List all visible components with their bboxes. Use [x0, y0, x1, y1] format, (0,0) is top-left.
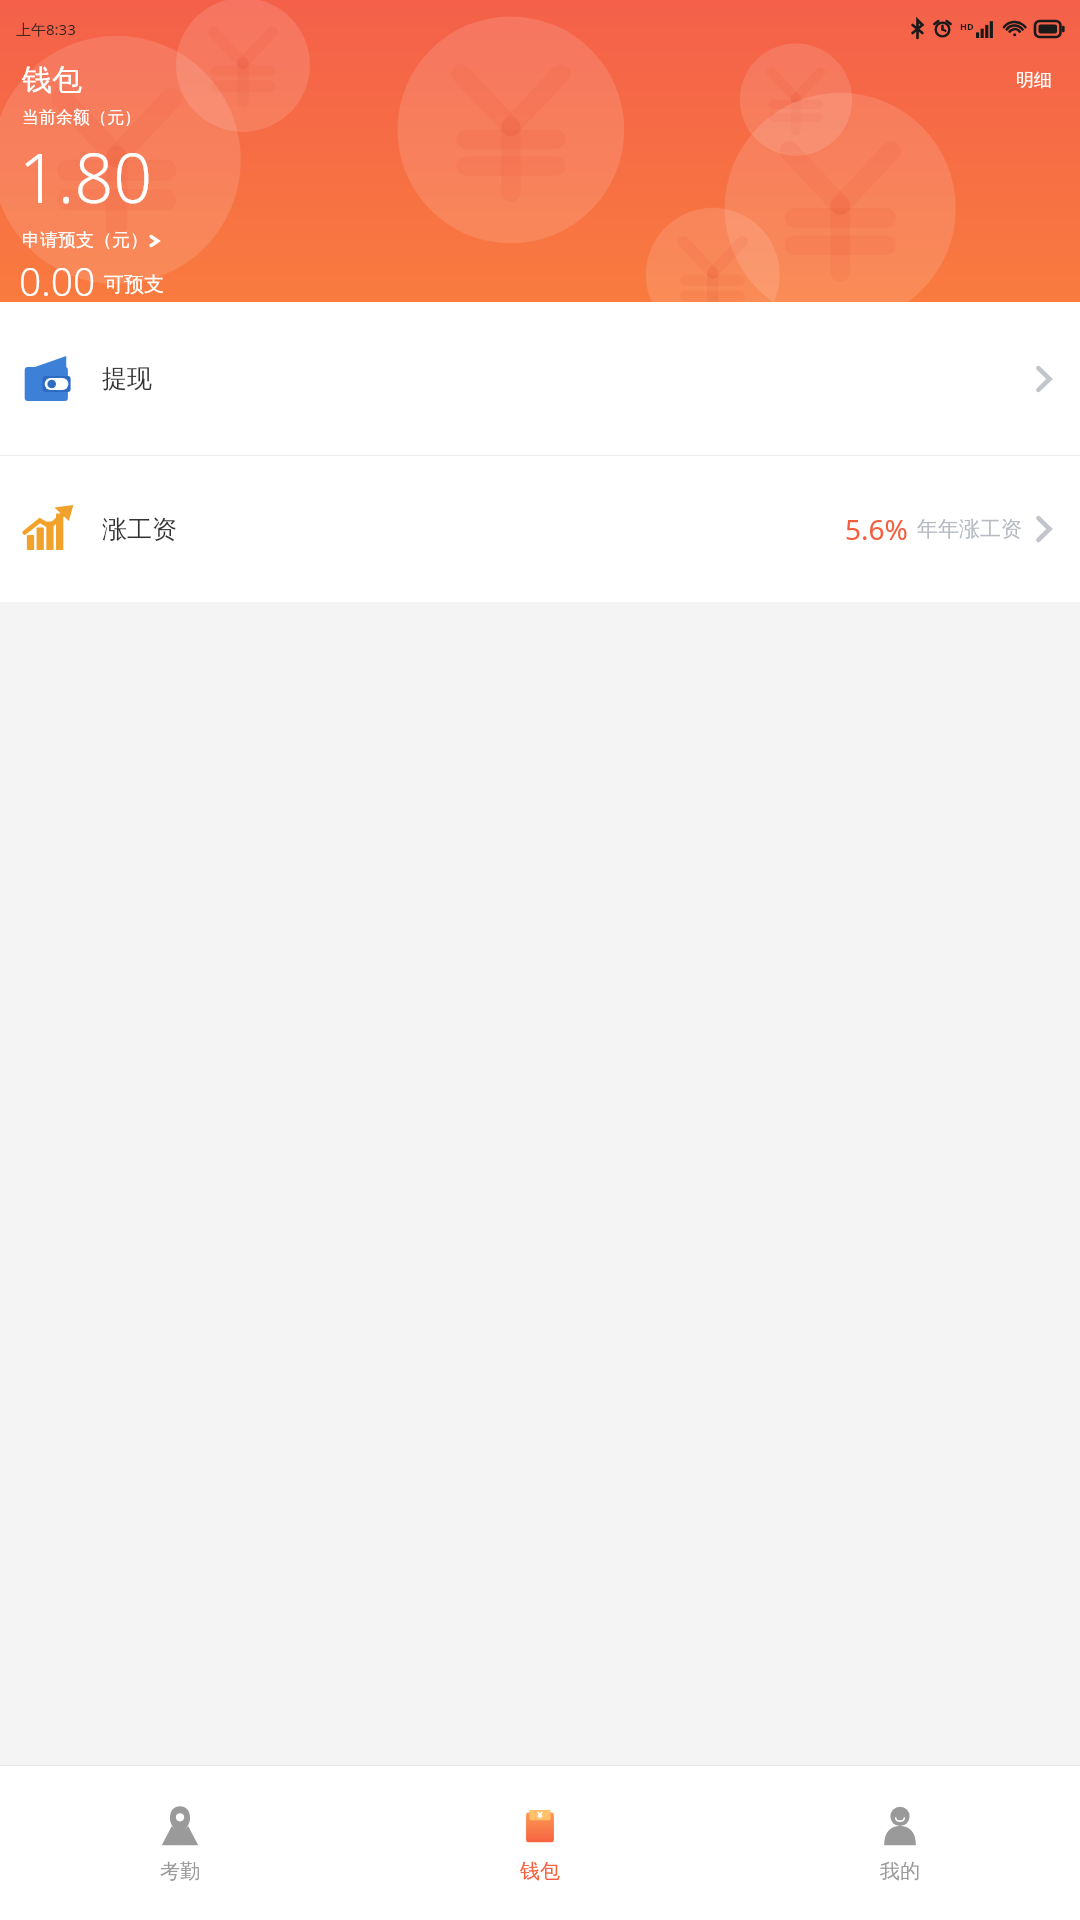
staticText: 我的: [880, 1859, 920, 1884]
button[interactable]: 钱包: [360, 1766, 720, 1920]
button[interactable]: 涨工资: [0, 456, 1080, 602]
staticText: 涨工资: [102, 514, 177, 545]
staticText: 0.00: [19, 254, 96, 302]
button[interactable]: 明细: [1008, 63, 1060, 98]
staticText: 考勤: [160, 1859, 200, 1884]
staticText: 可预支: [104, 272, 164, 297]
staticText: 钱包: [520, 1859, 560, 1884]
staticText: 上午8:33: [16, 19, 76, 39]
staticText: 5.6%: [845, 510, 908, 548]
staticText: 明细: [1016, 69, 1052, 92]
staticText: 1.80: [19, 130, 153, 223]
button[interactable]: 我的: [720, 1766, 1080, 1920]
staticText: 年年涨工资: [917, 516, 1022, 542]
button[interactable]: 申请预支（元）: [22, 229, 162, 252]
staticText: 当前余额（元）: [22, 107, 141, 128]
button[interactable]: 考勤: [0, 1766, 360, 1920]
button[interactable]: 提现: [0, 302, 1080, 455]
staticText: 申请预支（元）: [22, 229, 148, 252]
staticText: HD: [960, 20, 974, 32]
staticText: 钱包: [22, 61, 82, 99]
staticText: 提现: [102, 363, 152, 394]
